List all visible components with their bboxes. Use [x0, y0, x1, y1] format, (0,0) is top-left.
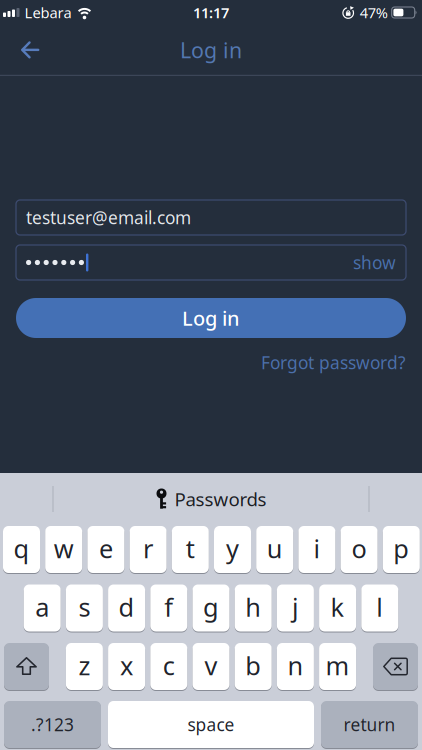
staticText: z	[78, 649, 90, 682]
button[interactable]: h	[235, 584, 272, 632]
button[interactable]: return	[321, 700, 418, 748]
button[interactable]: Forgot password?	[261, 351, 406, 374]
button[interactable]: b	[235, 642, 272, 690]
staticText: p	[393, 532, 409, 565]
button[interactable]: m	[319, 642, 356, 690]
button[interactable]: o	[341, 525, 378, 573]
staticText: Log in	[180, 36, 242, 64]
staticText: v	[204, 649, 217, 682]
button[interactable]: s	[66, 584, 103, 632]
button[interactable]: k	[319, 584, 356, 632]
button[interactable]: Delete	[373, 642, 418, 690]
button[interactable]: x	[108, 642, 145, 690]
staticText: w	[54, 532, 74, 565]
staticText: u	[267, 532, 283, 565]
staticText: .?123	[31, 713, 74, 736]
button[interactable]: .?123	[4, 700, 101, 748]
staticText: s	[78, 590, 90, 624]
button[interactable]: Shift	[4, 642, 49, 690]
staticText: q	[13, 532, 29, 565]
button[interactable]: l	[361, 584, 398, 632]
button[interactable]: r	[130, 525, 167, 573]
button[interactable]: Email field	[16, 200, 406, 235]
staticText: o	[352, 532, 367, 565]
button[interactable]: w	[45, 525, 82, 573]
staticText: k	[331, 590, 345, 624]
staticText: 11:17	[193, 3, 229, 22]
button[interactable]: v	[192, 642, 229, 690]
staticText: l	[376, 590, 383, 624]
button[interactable]: t	[172, 525, 209, 573]
button[interactable]: e	[87, 525, 124, 573]
staticText: i	[313, 532, 320, 565]
staticText: return	[343, 713, 395, 736]
button[interactable]: y	[214, 525, 251, 573]
staticText: Forgot password?	[261, 351, 406, 374]
staticText: c	[163, 649, 175, 682]
button[interactable]: z	[66, 642, 103, 690]
button[interactable]: d	[108, 584, 145, 632]
button[interactable]: Password field	[16, 245, 406, 280]
staticText: b	[245, 649, 261, 682]
staticText: space	[187, 713, 234, 736]
button[interactable]: space	[108, 700, 314, 748]
button[interactable]: Log in	[16, 298, 406, 338]
staticText: g	[203, 590, 219, 624]
button[interactable]: q	[3, 525, 40, 573]
staticText: m	[326, 649, 350, 682]
staticText: e	[99, 532, 113, 565]
button[interactable]: Passwords	[135, 481, 286, 517]
staticText: r	[143, 532, 153, 565]
staticText: n	[287, 649, 303, 682]
staticText: x	[120, 649, 133, 682]
staticText: y	[226, 532, 239, 565]
staticText: Lebara	[24, 3, 71, 22]
button[interactable]: Back	[0, 32, 40, 68]
staticText: Log in	[182, 305, 240, 331]
staticText: j	[292, 590, 299, 624]
button[interactable]: a	[24, 584, 61, 632]
staticText: Passwords	[174, 487, 266, 511]
staticText: testuser@email.com	[26, 206, 191, 229]
button[interactable]: g	[192, 584, 229, 632]
staticText: d	[119, 590, 135, 624]
staticText: show	[353, 251, 396, 274]
button[interactable]: show	[353, 251, 396, 274]
staticText: f	[164, 590, 173, 624]
button[interactable]: p	[383, 525, 420, 573]
button[interactable]: c	[150, 642, 187, 690]
staticText: t	[186, 532, 195, 565]
button[interactable]: u	[256, 525, 293, 573]
staticText: 47%	[360, 3, 388, 22]
staticText: h	[245, 590, 261, 624]
button[interactable]: j	[277, 584, 314, 632]
button[interactable]: n	[277, 642, 314, 690]
button[interactable]: f	[150, 584, 187, 632]
staticText: a	[35, 590, 49, 624]
button[interactable]: i	[298, 525, 335, 573]
